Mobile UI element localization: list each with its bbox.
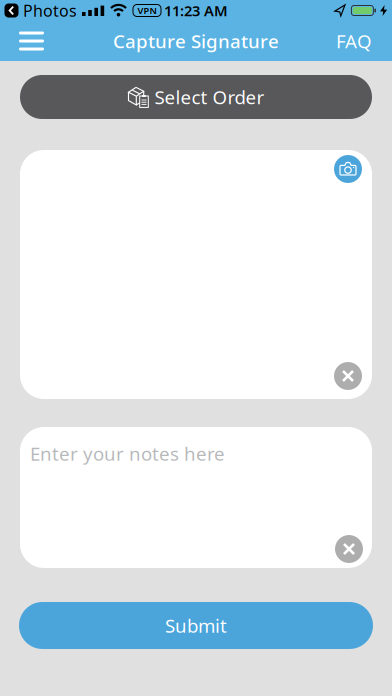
button[interactable]: Submit [19,602,373,649]
button[interactable]: Clear [334,362,362,390]
staticText: VPN [137,4,156,17]
staticText: 11:23 AM [164,1,228,20]
staticText: Select Order [154,85,264,109]
button[interactable]: Take photo [334,155,362,183]
staticText: Photos [23,0,77,21]
button[interactable]: Menu [19,31,44,50]
button[interactable]: FAQ [336,29,372,53]
staticText: Enter your notes here [30,441,225,466]
staticText: Capture Signature [113,29,279,53]
staticText: FAQ [336,29,372,53]
staticText: Submit [165,613,227,638]
button[interactable]: Clear [335,535,363,563]
button[interactable]: Select Order [20,75,372,119]
